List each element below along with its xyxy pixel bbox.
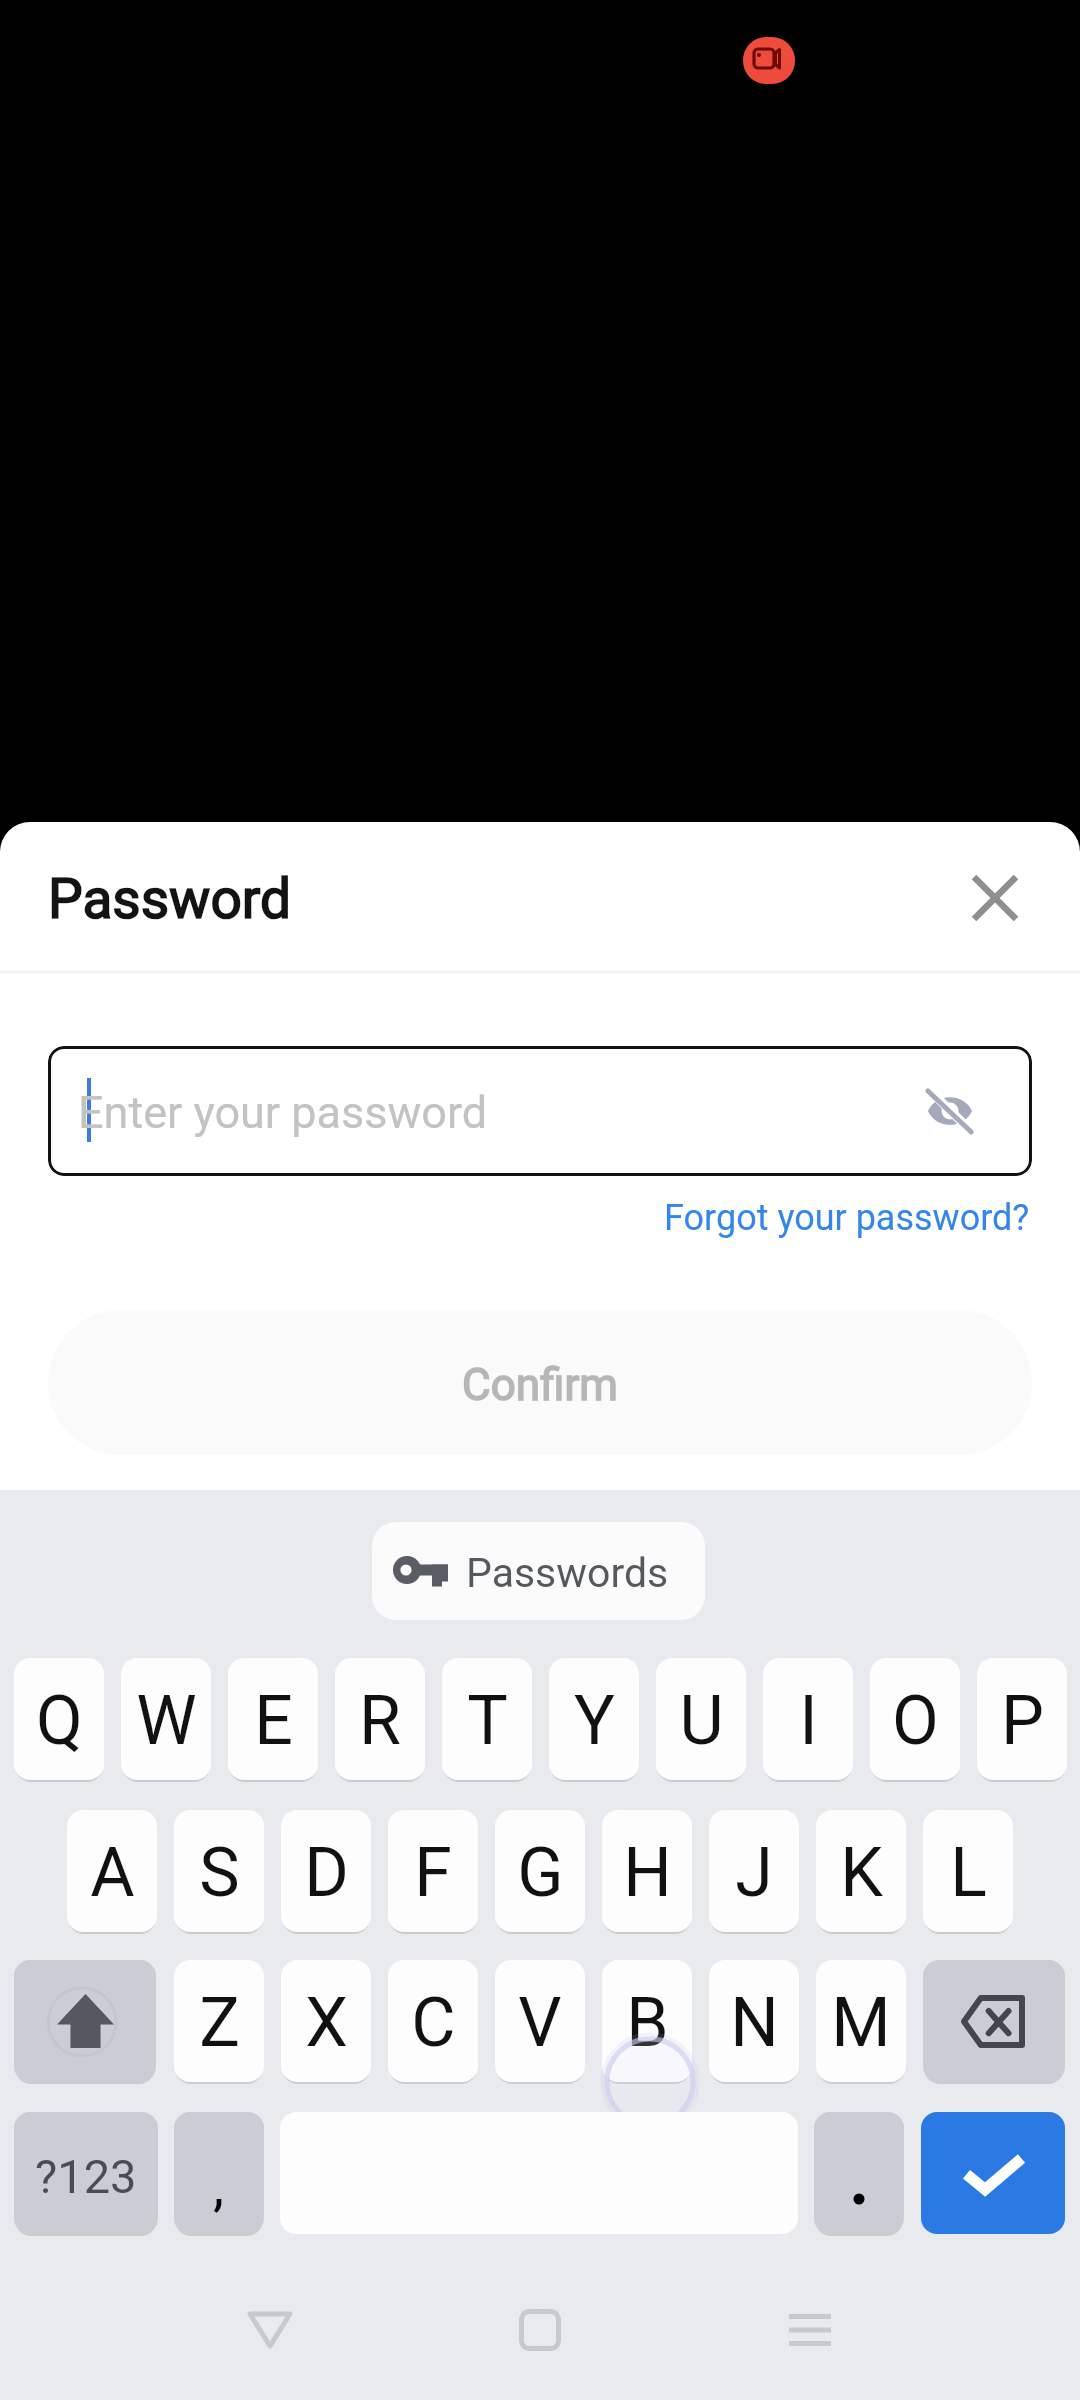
staticText: O <box>892 1681 939 1761</box>
button[interactable]: L <box>923 1810 1013 1932</box>
button[interactable]: Y <box>549 1658 639 1780</box>
button[interactable]: U <box>656 1658 746 1780</box>
staticText: F <box>414 1833 452 1913</box>
staticText: E <box>254 1681 293 1761</box>
button[interactable]: Enter <box>921 2112 1065 2234</box>
button[interactable]: T <box>442 1658 532 1780</box>
button[interactable]: Enter your password <box>48 1046 1032 1176</box>
button[interactable]: Recents <box>750 2270 870 2390</box>
button[interactable]: Shift <box>14 1960 156 2082</box>
staticText: ?123 <box>35 2149 137 2204</box>
staticText: B <box>626 1983 669 2063</box>
staticText: R <box>359 1681 401 1761</box>
button[interactable]: Close <box>935 838 1055 958</box>
staticText: U <box>679 1681 724 1761</box>
staticText: Password <box>48 867 291 931</box>
button[interactable]: K <box>816 1810 906 1932</box>
staticText: , <box>213 2153 225 2219</box>
staticText: Enter your password <box>78 1086 488 1139</box>
staticText: D <box>304 1833 349 1913</box>
staticText: Y <box>574 1681 615 1761</box>
staticText: M <box>831 1983 891 2063</box>
staticText: L <box>950 1833 987 1913</box>
button[interactable]: Passwords <box>372 1522 705 1620</box>
button[interactable]: B <box>602 1960 692 2082</box>
button[interactable]: Back <box>210 2270 330 2390</box>
button[interactable]: Z <box>174 1960 264 2082</box>
button[interactable]: I <box>763 1658 853 1780</box>
button[interactable] <box>814 2112 904 2234</box>
button[interactable]: M <box>816 1960 906 2082</box>
staticText: C <box>411 1983 456 2063</box>
button[interactable]: Show password <box>914 1075 986 1147</box>
button[interactable]: J <box>709 1810 799 1932</box>
button[interactable]: H <box>602 1810 692 1932</box>
staticText: H <box>623 1833 672 1913</box>
staticText: Confirm <box>462 1359 618 1411</box>
button[interactable]: Screen recording <box>743 37 795 84</box>
button[interactable]: P <box>977 1658 1067 1780</box>
staticText: G <box>517 1833 564 1913</box>
button[interactable]: ?123 <box>14 2112 158 2234</box>
button[interactable]: , <box>174 2112 264 2234</box>
button[interactable]: A <box>67 1810 157 1932</box>
staticText: Q <box>36 1681 83 1761</box>
button[interactable]: R <box>335 1658 425 1780</box>
staticText: N <box>730 1983 779 2063</box>
staticText: W <box>136 1681 197 1761</box>
staticText: J <box>735 1833 773 1913</box>
button[interactable]: S <box>174 1810 264 1932</box>
staticText: S <box>199 1833 240 1913</box>
button[interactable]: V <box>495 1960 585 2082</box>
other: Backspace <box>944 1971 1044 2071</box>
other: Shift <box>35 1971 135 2071</box>
button[interactable]: Q <box>14 1658 104 1780</box>
staticText: Passwords <box>466 1549 669 1597</box>
staticText: I <box>799 1681 818 1761</box>
button[interactable]: W <box>121 1658 211 1780</box>
staticText: T <box>467 1681 508 1761</box>
button[interactable]: C <box>388 1960 478 2082</box>
staticText: X <box>305 1983 348 2063</box>
button[interactable]: Home <box>480 2270 600 2390</box>
button[interactable]: Backspace <box>923 1960 1065 2082</box>
button[interactable]: G <box>495 1810 585 1932</box>
button[interactable]: N <box>709 1960 799 2082</box>
button[interactable]: O <box>870 1658 960 1780</box>
button[interactable]: F <box>388 1810 478 1932</box>
staticText: V <box>518 1983 562 2063</box>
button[interactable]: X <box>281 1960 371 2082</box>
staticText: Z <box>199 1983 240 2063</box>
button[interactable]: Forgot your password? <box>664 1197 1030 1239</box>
staticText: K <box>840 1833 883 1913</box>
staticText: A <box>90 1833 135 1913</box>
button[interactable]: D <box>281 1810 371 1932</box>
button[interactable]: Confirm <box>48 1310 1032 1455</box>
button[interactable]: E <box>228 1658 318 1780</box>
staticText: P <box>1001 1681 1044 1761</box>
button: Password <box>0 846 420 946</box>
